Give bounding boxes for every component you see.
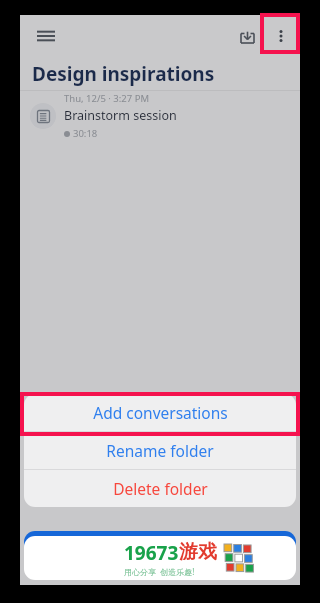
staticText: Design inspirations [32, 61, 215, 87]
button[interactable]: Rename folder [24, 432, 296, 469]
staticText: 19673 [124, 540, 179, 566]
staticText: Thu, 12/5 · 3:27 PM [64, 92, 150, 105]
button[interactable]: Delete folder [24, 470, 296, 507]
button[interactable]: Download [230, 19, 264, 53]
button[interactable] [24, 531, 296, 573]
staticText: 用心分享 创造乐趣! [124, 566, 195, 577]
staticText: Delete folder [113, 478, 208, 499]
button[interactable]: More options [264, 19, 298, 53]
button[interactable]: Thu, 12/5 · 3:27 PM [20, 91, 300, 141]
staticText: Rename folder [106, 440, 214, 461]
staticText: 30:18 [73, 127, 98, 140]
button[interactable]: Add conversations [24, 394, 296, 431]
staticText: Brainstorm session [64, 107, 177, 124]
button[interactable]: Menu [26, 16, 66, 56]
staticText: Add conversations [93, 402, 228, 423]
staticText: 游戏 [179, 540, 217, 564]
